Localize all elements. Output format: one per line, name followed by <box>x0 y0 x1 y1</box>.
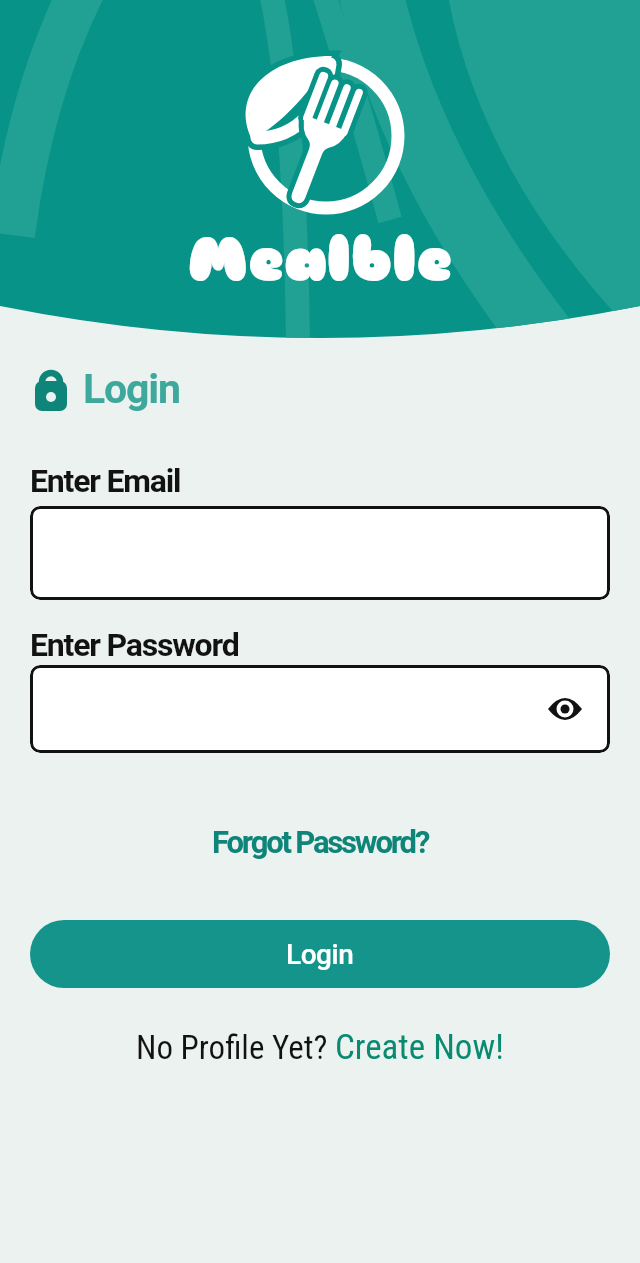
button[interactable]: Login <box>30 920 610 988</box>
button[interactable] <box>30 506 610 600</box>
staticText: Mealble <box>188 222 453 298</box>
staticText: Login <box>83 365 180 413</box>
button[interactable]: Create Now! <box>335 1027 504 1068</box>
button[interactable]: Forgot Password? <box>212 824 429 860</box>
button[interactable] <box>30 665 610 753</box>
staticText: Enter Password <box>30 626 239 664</box>
staticText: No Profile Yet? <box>136 1028 335 1067</box>
staticText: Enter Email <box>30 462 181 500</box>
staticText: Login <box>286 938 354 971</box>
button[interactable] <box>548 695 584 723</box>
